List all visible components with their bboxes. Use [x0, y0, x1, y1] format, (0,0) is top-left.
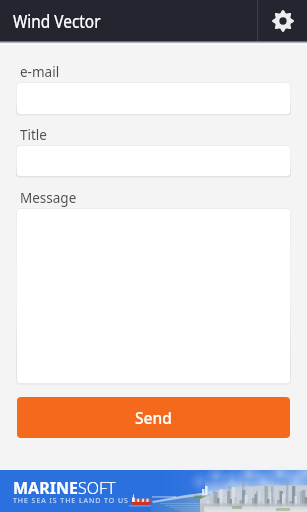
- button[interactable]: [16, 145, 291, 178]
- staticText: Send: [135, 407, 172, 428]
- button[interactable]: Send: [17, 397, 290, 438]
- staticText: Title: [20, 126, 47, 144]
- button[interactable]: MARINE: [0, 470, 307, 512]
- button[interactable]: Settings: [258, 0, 307, 41]
- staticText: THE SEA IS THE LAND TO US: [13, 496, 129, 506]
- button[interactable]: [16, 82, 291, 116]
- staticText: e-mail: [20, 63, 60, 81]
- staticText: Wind Vector: [13, 9, 101, 33]
- button[interactable]: [16, 208, 291, 385]
- staticText: SOFT: [78, 477, 116, 499]
- staticText: MARINE: [13, 477, 78, 499]
- staticText: Message: [20, 189, 77, 207]
